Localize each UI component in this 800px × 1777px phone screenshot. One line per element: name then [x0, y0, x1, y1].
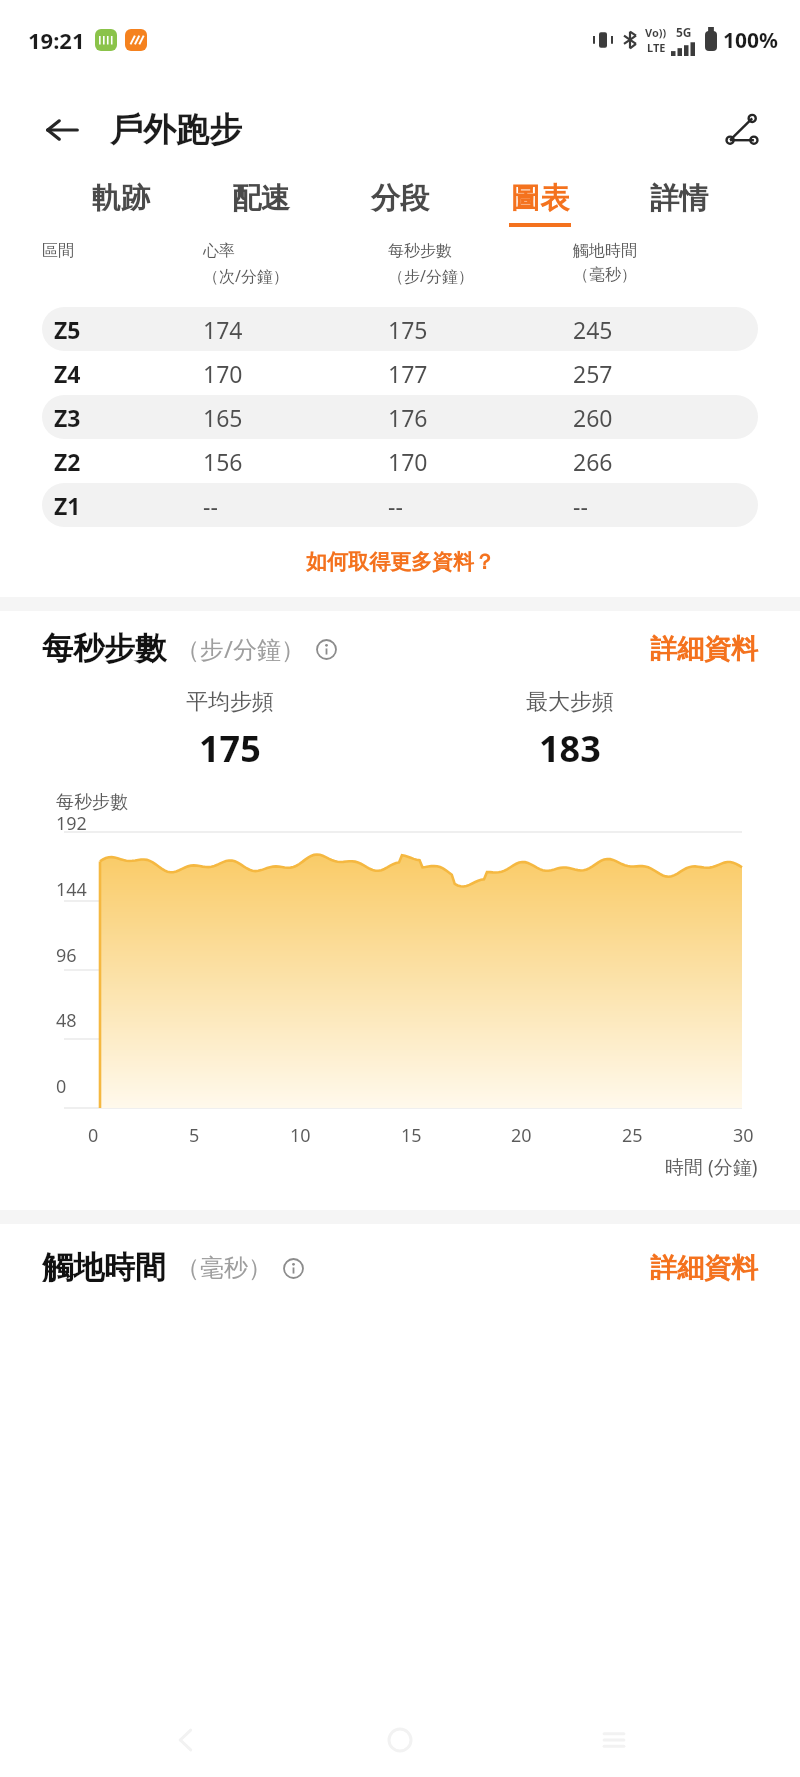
- staticText: 165: [203, 402, 243, 433]
- staticText: 144: [56, 877, 87, 902]
- staticText: 260: [573, 402, 613, 433]
- staticText: 100%: [723, 26, 778, 55]
- staticText: 0: [88, 1123, 99, 1148]
- staticText: 分段: [371, 180, 429, 217]
- staticText: 戶外跑步: [110, 109, 242, 151]
- staticText: --: [388, 490, 403, 521]
- staticText: Z5: [54, 314, 81, 345]
- button[interactable]: 圖表: [505, 180, 575, 227]
- staticText: LTE: [647, 40, 666, 55]
- staticText: 25: [622, 1123, 643, 1148]
- staticText: 170: [203, 358, 243, 389]
- staticText: （毫秒）: [573, 265, 637, 285]
- staticText: 30: [733, 1123, 754, 1148]
- staticText: 5: [189, 1123, 200, 1148]
- button[interactable]: Back: [38, 106, 86, 154]
- staticText: 266: [573, 446, 613, 477]
- staticText: Z3: [54, 402, 81, 433]
- staticText: Z4: [54, 358, 81, 389]
- button[interactable]: Z3: [42, 395, 758, 439]
- staticText: 15: [401, 1123, 422, 1148]
- button[interactable]: Info: [311, 634, 341, 664]
- staticText: Vo)): [645, 25, 667, 40]
- staticText: 心率: [203, 241, 235, 261]
- staticText: 平均步頻: [186, 688, 274, 716]
- staticText: （毫秒）: [176, 1253, 272, 1283]
- staticText: 183: [539, 724, 601, 773]
- staticText: 19:21: [28, 25, 85, 55]
- staticText: 軌跡: [92, 180, 150, 217]
- staticText: （步/分鐘）: [388, 265, 474, 287]
- staticText: （步/分鐘）: [176, 632, 305, 665]
- staticText: 245: [573, 314, 613, 345]
- staticText: 175: [388, 314, 428, 345]
- staticText: 174: [203, 314, 243, 345]
- button[interactable]: Z1: [42, 483, 758, 527]
- staticText: 最大步頻: [526, 688, 614, 716]
- staticText: 每秒步數: [56, 791, 128, 814]
- staticText: 時間 (分鐘): [665, 1154, 758, 1180]
- button[interactable]: Z5: [42, 307, 758, 351]
- staticText: --: [203, 490, 218, 521]
- button[interactable]: 詳細資料: [650, 1251, 758, 1285]
- staticText: Z2: [54, 446, 81, 477]
- staticText: 區間: [42, 241, 74, 261]
- staticText: 257: [573, 358, 613, 389]
- staticText: 20: [511, 1123, 532, 1148]
- button[interactable]: 詳細資料: [650, 632, 758, 666]
- staticText: 5G: [676, 24, 692, 40]
- staticText: 10: [290, 1123, 311, 1148]
- button[interactable]: Home: [372, 1712, 428, 1768]
- staticText: 圖表: [511, 180, 569, 217]
- button[interactable]: 分段: [365, 180, 435, 227]
- staticText: 192: [56, 811, 87, 836]
- staticText: 48: [56, 1008, 77, 1033]
- button[interactable]: 如何取得更多資料？: [0, 549, 800, 575]
- staticText: --: [573, 490, 588, 521]
- staticText: 170: [388, 446, 428, 477]
- staticText: 每秒步數: [388, 241, 452, 261]
- staticText: 觸地時間: [42, 1248, 166, 1287]
- button[interactable]: Info: [278, 1253, 308, 1283]
- staticText: 詳細資料: [650, 632, 758, 666]
- staticText: 觸地時間: [573, 241, 637, 261]
- staticText: 配速: [232, 180, 290, 217]
- staticText: 詳細資料: [650, 1251, 758, 1285]
- button[interactable]: Z2: [42, 439, 758, 483]
- staticText: （次/分鐘）: [203, 265, 289, 287]
- button[interactable]: 配速: [226, 180, 296, 227]
- staticText: 詳情: [650, 180, 708, 217]
- button[interactable]: Share: [718, 106, 766, 154]
- staticText: 175: [199, 724, 261, 773]
- button[interactable]: Z4: [42, 351, 758, 395]
- staticText: 96: [56, 943, 77, 968]
- staticText: Z1: [54, 490, 81, 521]
- staticText: 156: [203, 446, 243, 477]
- button[interactable]: 軌跡: [86, 180, 156, 227]
- staticText: 每秒步數: [42, 629, 166, 668]
- button[interactable]: 詳情: [644, 180, 714, 227]
- staticText: 176: [388, 402, 428, 433]
- staticText: 177: [388, 358, 428, 389]
- staticText: 如何取得更多資料？: [306, 549, 495, 575]
- staticText: 0: [56, 1074, 67, 1099]
